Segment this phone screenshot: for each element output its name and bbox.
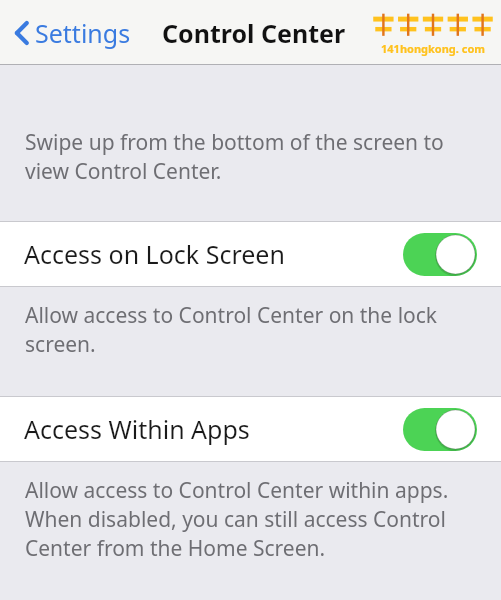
staticText: Allow access to Control Center on the lo… [25, 301, 438, 330]
staticText: When disabled, you can still access Cont… [25, 505, 446, 534]
button[interactable]: Toggle on [403, 233, 477, 276]
button[interactable]: Toggle on [403, 408, 477, 451]
staticText: Center from the Home Screen. [25, 534, 326, 563]
staticText: Swipe up from the bottom of the screen t… [25, 128, 444, 157]
staticText: view Control Center. [25, 157, 222, 186]
staticText: 141hongkong. com [381, 41, 486, 56]
staticText: Access on Lock Screen [24, 237, 285, 271]
staticText: Control Center [162, 16, 346, 50]
staticText: Allow access to Control Center within ap… [25, 476, 449, 505]
button[interactable]: Access on Lock Screen [0, 222, 501, 286]
button[interactable]: Access Within Apps [0, 397, 501, 461]
button[interactable]: Settings [10, 12, 135, 54]
staticText: Access Within Apps [24, 412, 250, 446]
staticText: Settings [35, 16, 131, 50]
staticText: screen. [25, 330, 96, 359]
